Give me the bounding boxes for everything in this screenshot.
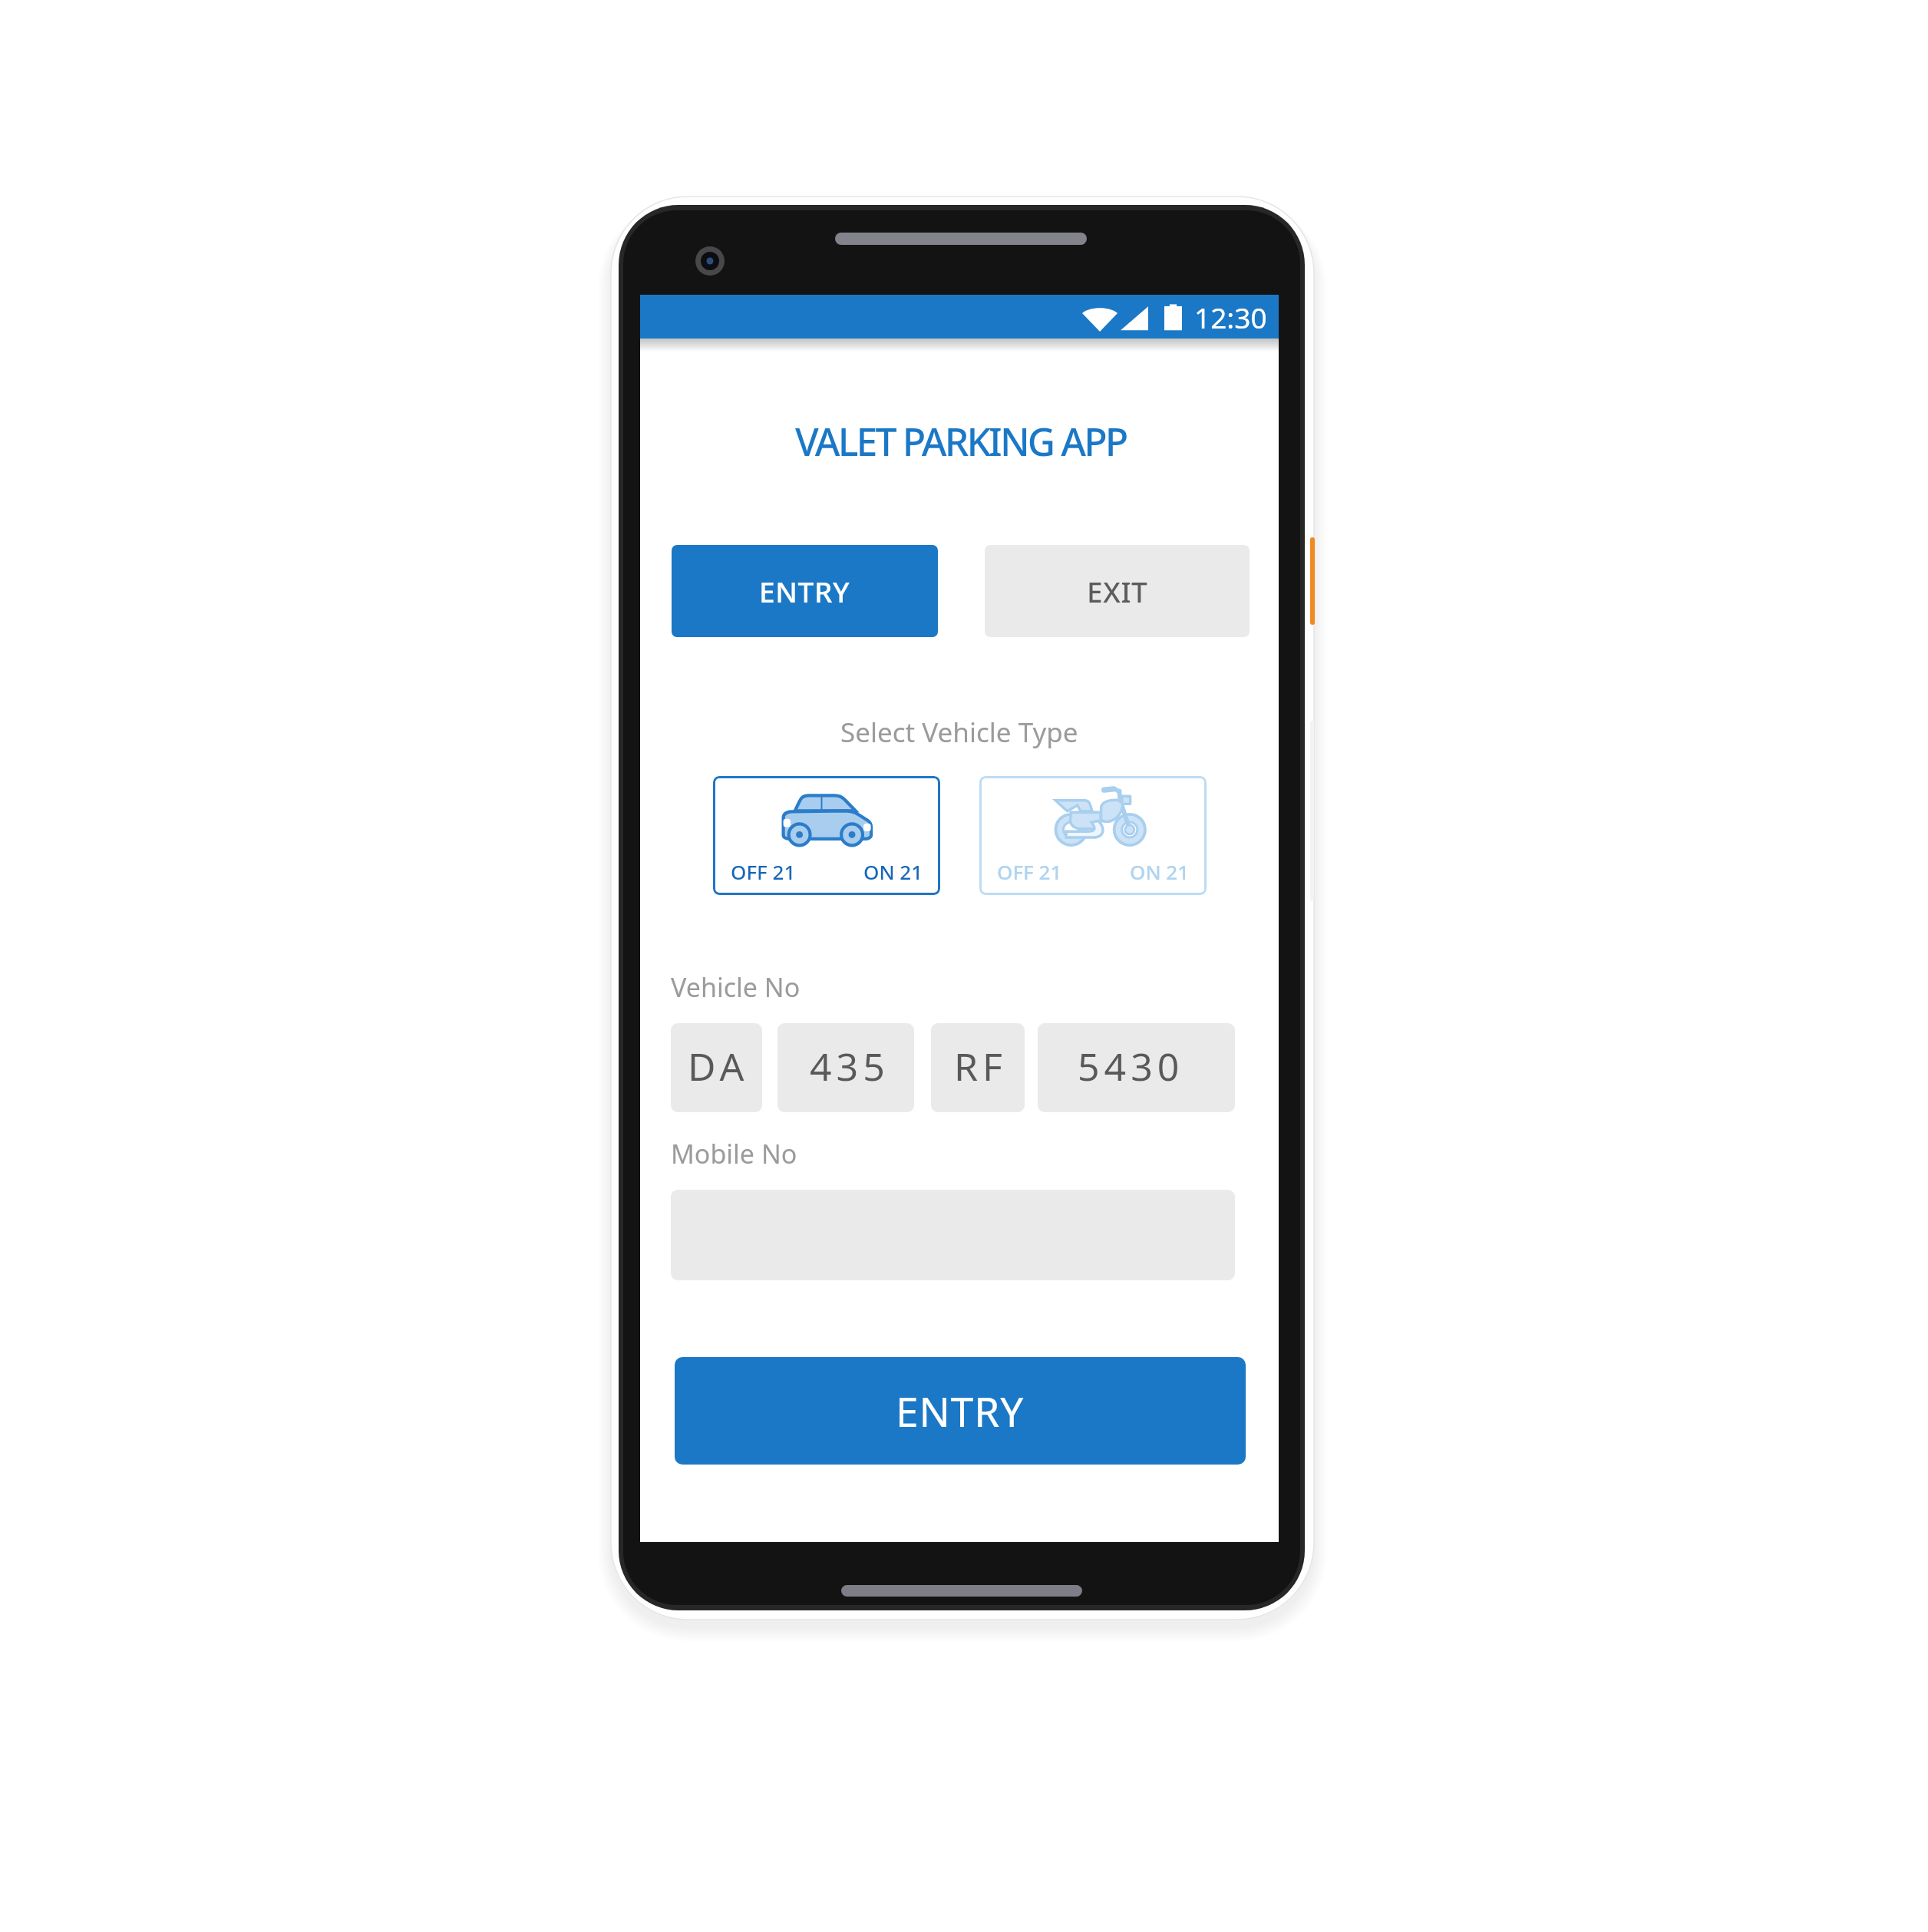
button[interactable]: Motorcycle xyxy=(979,776,1207,895)
staticText: ON 21 xyxy=(863,858,923,885)
button[interactable]: 435 xyxy=(777,1023,914,1112)
staticText: EXIT xyxy=(1087,572,1148,610)
staticText: ENTRY xyxy=(896,1383,1025,1438)
staticText: OFF 21 xyxy=(731,858,796,885)
button[interactable]: ENTRY xyxy=(672,545,938,637)
button[interactable]: 5430 xyxy=(1038,1023,1235,1112)
button[interactable]: RF xyxy=(931,1023,1025,1112)
button[interactable]: DA xyxy=(671,1023,762,1112)
staticText: 12:30 xyxy=(1194,298,1267,336)
staticText: DA xyxy=(688,1040,749,1092)
staticText: OFF 21 xyxy=(997,858,1062,885)
staticText: 5430 xyxy=(1078,1040,1184,1092)
staticText: RF xyxy=(954,1040,1008,1092)
staticText: ENTRY xyxy=(759,572,850,610)
button[interactable]: EXIT xyxy=(985,545,1250,637)
button[interactable]: ENTRY xyxy=(675,1357,1246,1465)
staticText: Select Vehicle Type xyxy=(840,714,1078,751)
staticText: VALET PARKING APP xyxy=(795,415,1127,467)
staticText: 435 xyxy=(810,1040,890,1092)
staticText: Vehicle No xyxy=(671,969,801,1005)
staticText: Mobile No xyxy=(671,1136,797,1171)
staticText: ON 21 xyxy=(1130,858,1190,885)
button[interactable]: Car xyxy=(713,776,940,895)
